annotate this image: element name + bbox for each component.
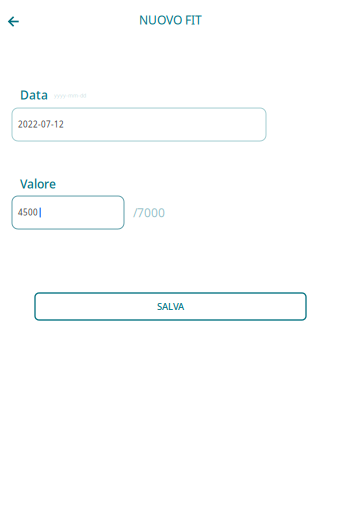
staticText: SALVA (157, 300, 184, 313)
staticText: NUOVO FIT (139, 12, 202, 28)
button[interactable]: SALVA (35, 293, 306, 320)
staticText: Valore (20, 176, 56, 192)
staticText: Data (20, 87, 48, 103)
staticText: /7000 (133, 204, 165, 220)
staticText: 2022-07-12 (18, 119, 64, 130)
button[interactable]: Back (1, 9, 29, 37)
staticText: 4500 (18, 207, 38, 218)
staticText: yyyy-mm-dd (54, 92, 86, 99)
